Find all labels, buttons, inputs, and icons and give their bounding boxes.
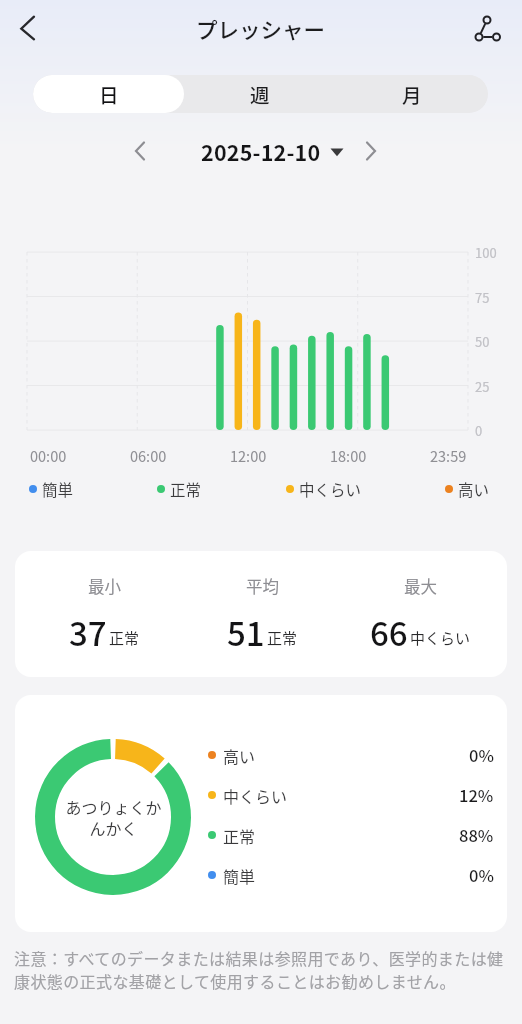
button[interactable] bbox=[462, 6, 506, 50]
staticText: 23:59 bbox=[430, 445, 467, 466]
staticText: あつりょくか んかく bbox=[65, 795, 162, 840]
staticText: 75 bbox=[475, 288, 490, 307]
staticText: 18:00 bbox=[330, 445, 367, 466]
staticText: 0 bbox=[475, 421, 483, 440]
staticText: 簡単 bbox=[223, 864, 256, 887]
staticText: 月 bbox=[402, 80, 422, 108]
staticText: 中くらい bbox=[410, 627, 471, 649]
staticText: 88% bbox=[459, 823, 494, 847]
staticText: プレッシャー bbox=[196, 13, 326, 44]
button[interactable] bbox=[127, 137, 155, 165]
staticText: 週 bbox=[250, 80, 270, 108]
button[interactable]: 週 bbox=[184, 75, 336, 113]
staticText: 中くらい bbox=[299, 478, 362, 500]
staticText: 12% bbox=[459, 783, 494, 807]
staticText: 0% bbox=[469, 863, 494, 887]
staticText: 100 bbox=[475, 243, 497, 262]
staticText: 注意：すべてのデータまたは結果は参照用であり、医学的または健康状態の正式な基礎と… bbox=[14, 946, 508, 993]
button[interactable]: 日 bbox=[33, 75, 184, 113]
button[interactable]: 2025-12-10 bbox=[201, 136, 344, 167]
staticText: 12:00 bbox=[230, 445, 267, 466]
staticText: 2025-12-10 bbox=[201, 136, 321, 167]
staticText: 50 bbox=[475, 332, 490, 351]
staticText: 正常 bbox=[223, 824, 256, 847]
staticText: 51 bbox=[227, 608, 265, 656]
button[interactable] bbox=[356, 137, 384, 165]
staticText: 正常 bbox=[170, 478, 202, 500]
staticText: 日 bbox=[99, 80, 119, 108]
staticText: 正常 bbox=[109, 627, 140, 649]
staticText: 06:00 bbox=[130, 445, 167, 466]
staticText: 簡単 bbox=[42, 478, 74, 500]
staticText: 0% bbox=[469, 743, 494, 767]
button[interactable]: 月 bbox=[336, 75, 488, 113]
button[interactable] bbox=[8, 6, 52, 50]
staticText: 25 bbox=[475, 377, 490, 396]
staticText: 平均 bbox=[246, 574, 279, 598]
staticText: 高い bbox=[458, 478, 490, 500]
staticText: 66 bbox=[370, 608, 408, 656]
staticText: 37 bbox=[69, 608, 107, 656]
staticText: 00:00 bbox=[30, 445, 67, 466]
staticText: 正常 bbox=[267, 627, 298, 649]
staticText: 中くらい bbox=[223, 784, 288, 807]
staticText: 最小 bbox=[88, 574, 121, 598]
staticText: 最大 bbox=[404, 574, 437, 598]
staticText: 高い bbox=[223, 744, 256, 767]
